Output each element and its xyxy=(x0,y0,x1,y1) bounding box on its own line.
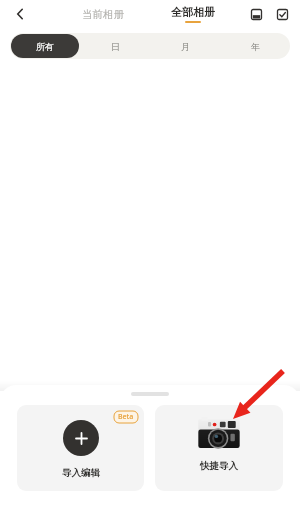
button[interactable]: Select xyxy=(270,2,294,26)
staticText: 日 xyxy=(111,41,120,52)
staticText: 全部相册 xyxy=(171,5,215,19)
button[interactable]: 月 xyxy=(151,34,219,58)
staticText: 导入编辑 xyxy=(62,467,100,479)
staticText: Beta xyxy=(118,412,134,422)
button[interactable]: 当前相册 xyxy=(82,8,124,21)
button[interactable]: 所有 xyxy=(11,34,79,58)
staticText: 年 xyxy=(251,41,260,52)
staticText: 月 xyxy=(181,41,190,52)
button[interactable]: 快捷导入 xyxy=(155,405,283,491)
button[interactable]: Album view xyxy=(244,2,268,26)
staticText: 当前相册 xyxy=(82,8,124,21)
staticText: 所有 xyxy=(36,41,54,52)
button[interactable]: Back xyxy=(6,0,34,28)
button[interactable]: 日 xyxy=(81,34,149,58)
button[interactable]: 全部相册 xyxy=(171,5,215,23)
button[interactable]: 年 xyxy=(221,34,289,58)
button[interactable]: 导入编辑 xyxy=(17,405,144,491)
staticText: 快捷导入 xyxy=(200,460,238,472)
